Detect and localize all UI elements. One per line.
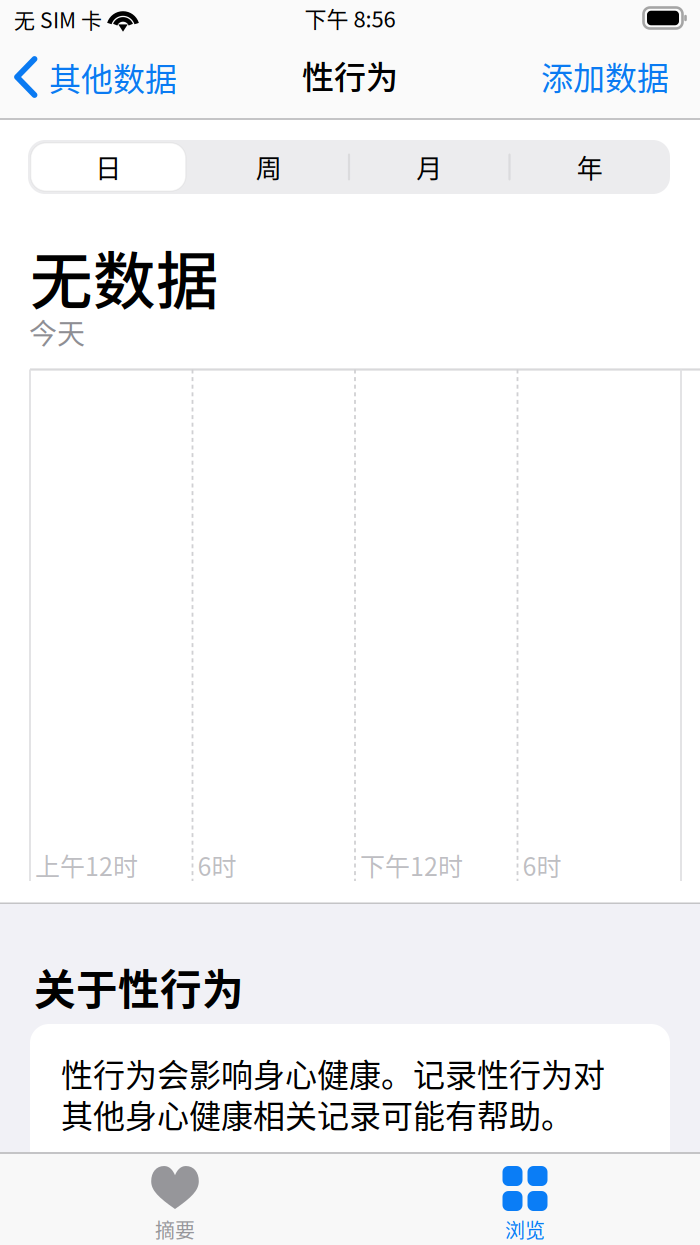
button[interactable]: 添加数据 [519, 47, 669, 105]
staticText: 月 [416, 148, 442, 186]
staticText: 下午12时 [360, 847, 463, 883]
staticText: 无 SIM 卡 [14, 4, 102, 34]
staticText: 周 [256, 148, 282, 186]
staticText: 无数据 [30, 232, 219, 322]
staticText: 性行为会影响身心健康。记录性行为对 [61, 1050, 605, 1096]
button[interactable]: 年 [509, 140, 670, 194]
staticText: 添加数据 [541, 53, 669, 99]
staticText: 摘要 [155, 1215, 195, 1244]
staticText: 浏览 [505, 1215, 545, 1244]
staticText: 今天 [29, 312, 85, 352]
staticText: 上午12时 [35, 847, 138, 883]
button[interactable]: 其他数据 [14, 48, 234, 106]
staticText: 其他身心健康相关记录可能有帮助。 [61, 1091, 573, 1137]
staticText: 其他数据 [49, 54, 177, 100]
button[interactable]: 月 [349, 140, 509, 194]
button[interactable]: 周 [188, 140, 349, 194]
staticText: 性行为 [302, 52, 398, 98]
staticText: 下午 8:56 [304, 2, 395, 34]
staticText: 6时 [522, 847, 561, 883]
staticText: 6时 [197, 847, 236, 883]
staticText: 日 [95, 148, 121, 186]
button[interactable]: 日 [28, 140, 188, 194]
button[interactable]: 浏览 [350, 1154, 700, 1245]
staticText: 关于性行为 [34, 957, 244, 1017]
staticText: 年 [577, 148, 603, 186]
button[interactable]: 摘要 [0, 1154, 350, 1245]
